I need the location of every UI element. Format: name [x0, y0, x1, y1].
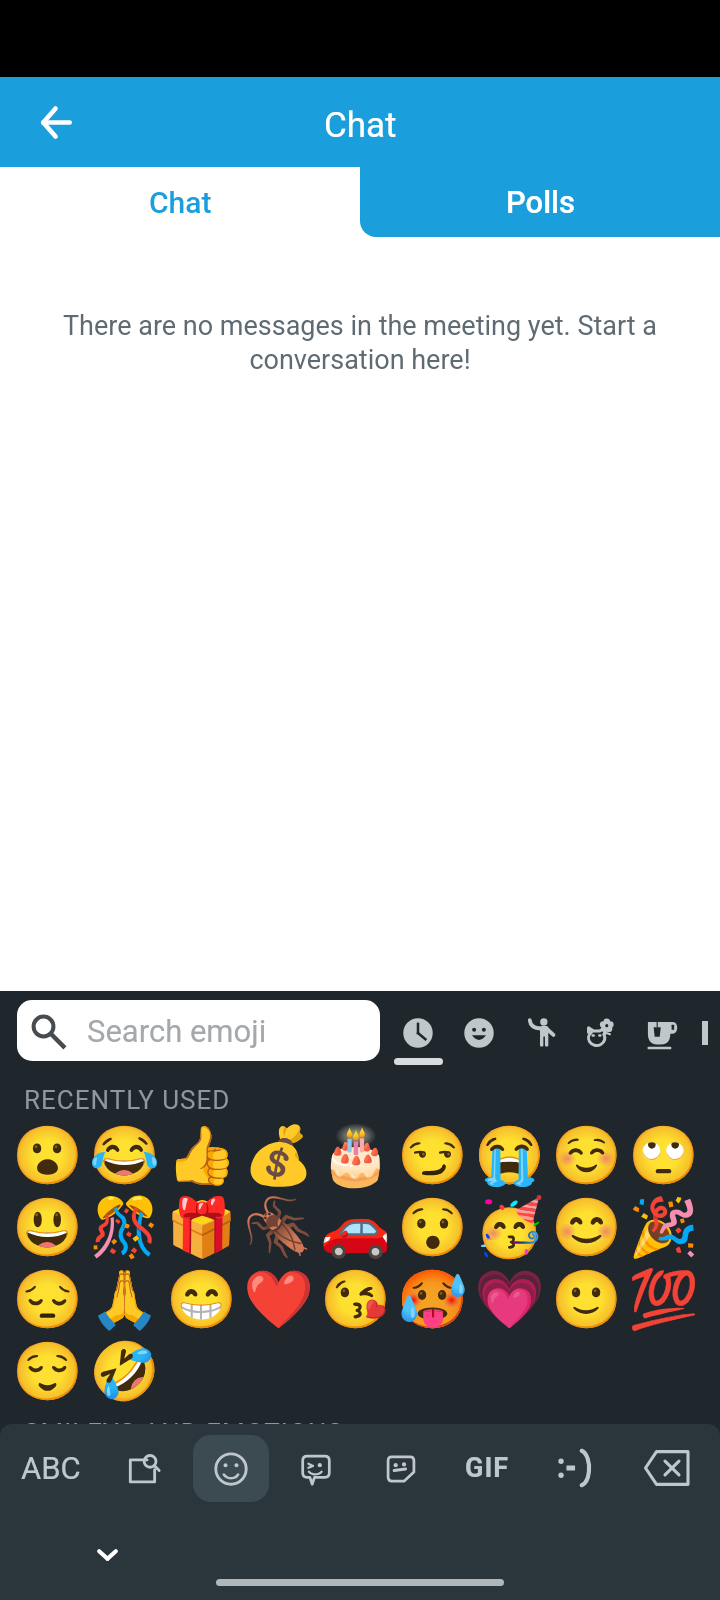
staticText: 😁	[166, 1266, 237, 1333]
button[interactable]: ABC	[8, 1424, 94, 1512]
button[interactable]: Hide keyboard	[79, 1527, 135, 1583]
button[interactable]: Recently used	[388, 991, 448, 1073]
button[interactable]: Polls	[360, 167, 720, 237]
button[interactable]: 😭	[471, 1119, 548, 1191]
staticText: 🤣	[89, 1338, 160, 1405]
button[interactable]: 🙂	[548, 1263, 625, 1335]
button[interactable]: 😮	[9, 1119, 86, 1191]
button[interactable]: Search emoji	[17, 1000, 380, 1061]
staticText: 🥳	[474, 1194, 545, 1261]
staticText: Search emoji	[87, 1013, 267, 1049]
staticText: 💯	[628, 1266, 699, 1333]
button[interactable]: 🙏	[86, 1263, 163, 1335]
staticText: 😂	[89, 1122, 160, 1189]
staticText: Polls	[506, 184, 575, 220]
button[interactable]: 😘	[317, 1263, 394, 1335]
button[interactable]: 😏	[394, 1119, 471, 1191]
staticText: 😘	[320, 1266, 391, 1333]
staticText: 💰	[243, 1122, 314, 1189]
staticText: 😏	[397, 1122, 468, 1189]
button[interactable]: 🥳	[471, 1191, 548, 1263]
staticText: 😮	[12, 1122, 83, 1189]
staticText: Chat	[149, 185, 212, 220]
staticText: ABC	[21, 1450, 81, 1486]
button[interactable]: 😌	[9, 1335, 86, 1407]
button[interactable]: 🤣	[86, 1335, 163, 1407]
button[interactable]: Search stickers	[101, 1424, 187, 1512]
staticText: SMILEYS AND EMOTIONS	[24, 1418, 344, 1448]
staticText: ☺️	[551, 1122, 622, 1189]
staticText: GIF	[465, 1452, 510, 1484]
button[interactable]: Food and drink	[632, 991, 692, 1073]
button[interactable]: 👍	[163, 1119, 240, 1191]
button[interactable]: 😂	[86, 1119, 163, 1191]
button[interactable]: 🎂	[317, 1119, 394, 1191]
staticText: There are no messages in the meeting yet…	[40, 310, 680, 376]
button[interactable]: Stickers	[358, 1424, 444, 1512]
button[interactable]: Smileys and emotions	[449, 991, 509, 1073]
staticText: ❤️	[243, 1266, 314, 1333]
button[interactable]: 😁	[163, 1263, 240, 1335]
staticText: 🎂	[320, 1122, 391, 1189]
button[interactable]: 💯	[625, 1263, 702, 1335]
staticText: 🙄	[628, 1122, 699, 1189]
button[interactable]: Emoticons	[530, 1424, 618, 1512]
button[interactable]: 🪳	[240, 1191, 317, 1263]
button[interactable]: 🎁	[163, 1191, 240, 1263]
button[interactable]: 🙄	[625, 1119, 702, 1191]
button[interactable]: 💗	[471, 1263, 548, 1335]
button[interactable]: 😃	[9, 1191, 86, 1263]
staticText: 😭	[474, 1122, 545, 1189]
button[interactable]: ❤️	[240, 1263, 317, 1335]
button[interactable]: People	[510, 991, 570, 1073]
button[interactable]: 💰	[240, 1119, 317, 1191]
button[interactable]: Activities	[700, 1017, 720, 1049]
staticText: 🥵	[397, 1266, 468, 1333]
button[interactable]: 😯	[394, 1191, 471, 1263]
staticText: 🎉	[628, 1194, 699, 1261]
staticText: 🚗	[320, 1194, 391, 1261]
staticText: 🎁	[166, 1194, 237, 1261]
staticText: 🪳	[243, 1194, 314, 1261]
staticText: 👍	[166, 1122, 237, 1189]
button[interactable]: 😊	[548, 1191, 625, 1263]
button[interactable]: Back	[24, 90, 88, 154]
staticText: 😔	[12, 1266, 83, 1333]
staticText: 😊	[551, 1194, 622, 1261]
button[interactable]: Chat	[0, 167, 360, 237]
button[interactable]: 😔	[9, 1263, 86, 1335]
button[interactable]: Backspace	[624, 1424, 712, 1512]
button[interactable]: 🎊	[86, 1191, 163, 1263]
button[interactable]: ☺️	[548, 1119, 625, 1191]
staticText: 💗	[474, 1266, 545, 1333]
staticText: 😃	[12, 1194, 83, 1261]
button[interactable]: Animals and nature	[571, 991, 631, 1073]
staticText: 🎊	[89, 1194, 160, 1261]
staticText: RECENTLY USED	[24, 1085, 231, 1115]
staticText: 🙂	[551, 1266, 622, 1333]
button[interactable]: 🎉	[625, 1191, 702, 1263]
button[interactable]: 🥵	[394, 1263, 471, 1335]
staticText: 😌	[12, 1338, 83, 1405]
button[interactable]: GIF	[443, 1424, 531, 1512]
staticText: 😯	[397, 1194, 468, 1261]
staticText: 🙏	[89, 1266, 160, 1333]
button[interactable]: Emoji kitchen	[273, 1424, 359, 1512]
button[interactable]: 🚗	[317, 1191, 394, 1263]
staticText: Chat	[324, 105, 397, 146]
button[interactable]: Emoji	[188, 1424, 274, 1512]
